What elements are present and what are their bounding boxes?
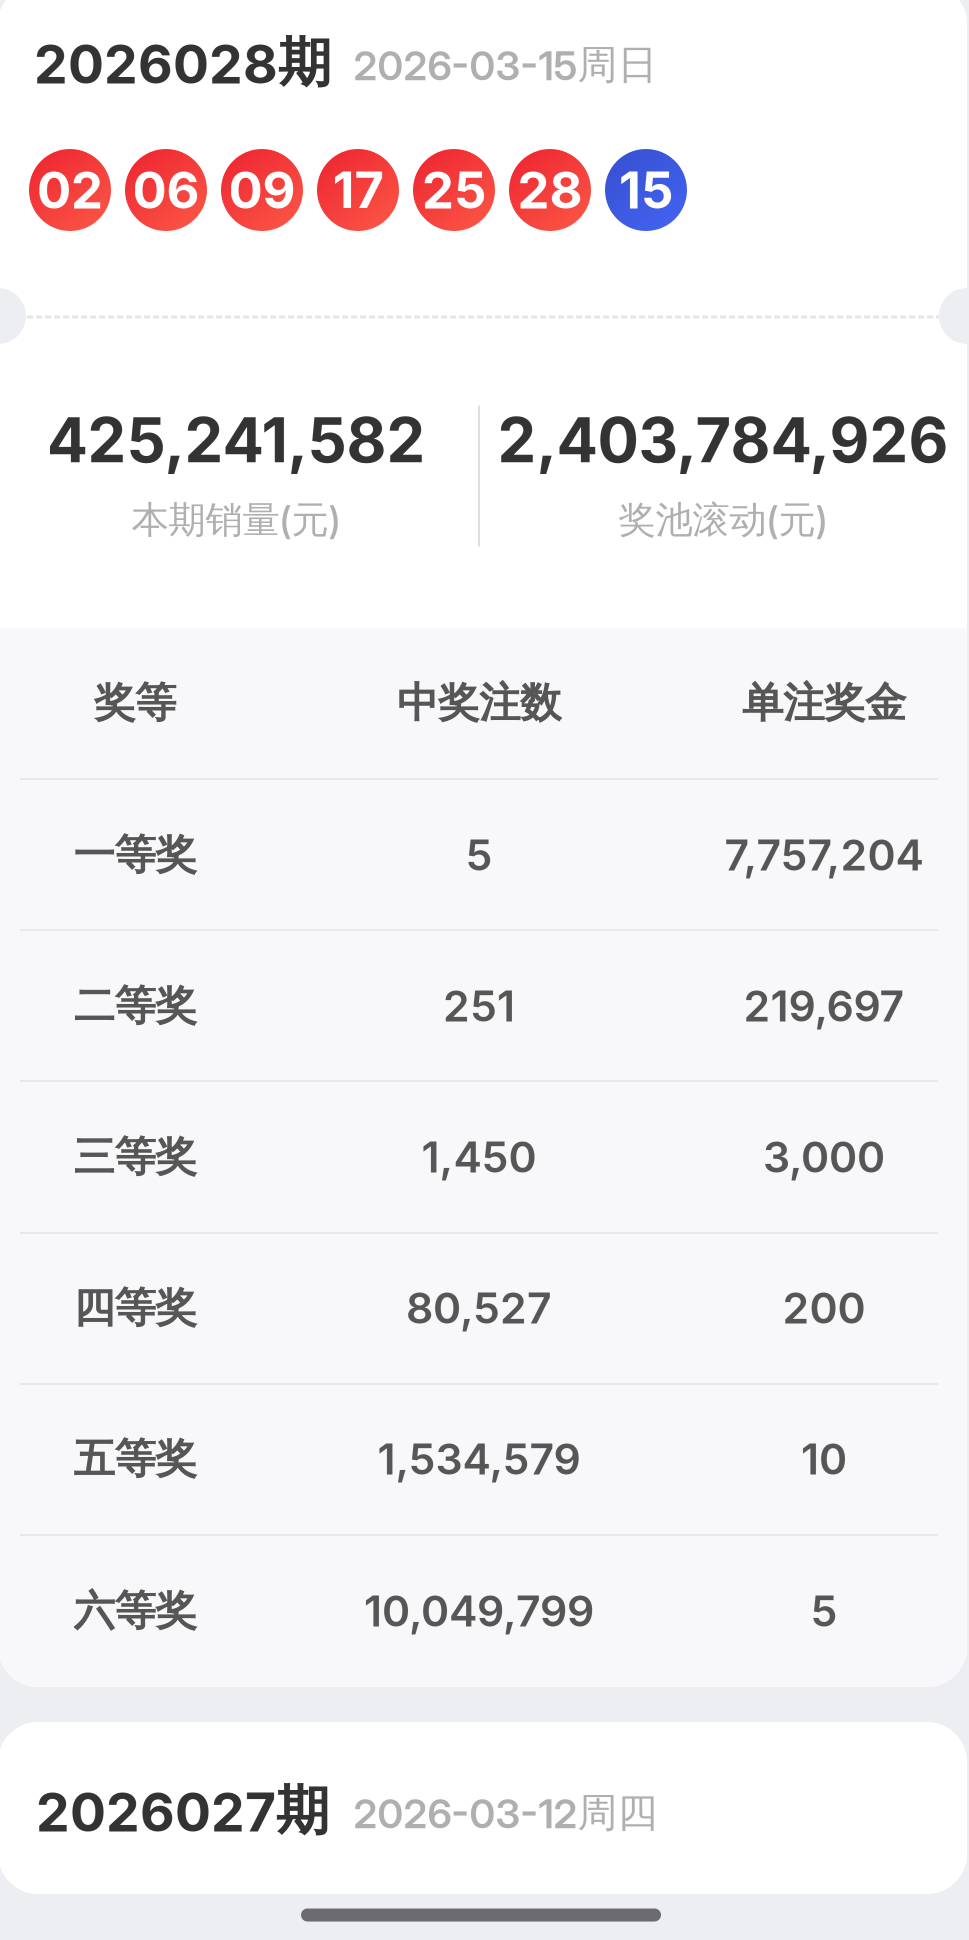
staticText: 7,757,204 — [724, 829, 923, 881]
button[interactable]: 2026027期 — [0, 1722, 967, 1894]
staticText: 五等奖 — [73, 1433, 196, 1485]
staticText: 17 — [332, 159, 383, 221]
button[interactable]: 06 — [125, 149, 207, 231]
button[interactable]: 15 — [605, 149, 687, 231]
button[interactable]: 28 — [509, 149, 591, 231]
staticText: 02 — [37, 159, 103, 221]
staticText: 5 — [465, 829, 492, 881]
staticText: 25 — [422, 159, 486, 221]
staticText: 二等奖 — [73, 980, 196, 1032]
staticText: 15 — [619, 159, 673, 221]
staticText: 三等奖 — [73, 1131, 196, 1183]
staticText: 四等奖 — [73, 1282, 196, 1334]
staticText: 200 — [782, 1282, 865, 1334]
staticText: 2026-03-15周日 — [353, 40, 657, 90]
button[interactable]: 2026028期 — [0, 8, 967, 118]
button[interactable]: 02 — [29, 149, 111, 231]
staticText: 5 — [810, 1585, 837, 1637]
staticText: 251 — [443, 980, 515, 1032]
staticText: 425,241,582 — [46, 403, 425, 477]
staticText: 10 — [801, 1433, 847, 1485]
staticText: 2026-03-12周四 — [353, 1788, 657, 1838]
staticText: 2026028期 — [34, 29, 331, 97]
staticText: 10,049,799 — [364, 1585, 594, 1637]
staticText: 奖池滚动(元) — [618, 496, 827, 543]
staticText: 2026027期 — [36, 1777, 329, 1845]
staticText: 06 — [132, 159, 199, 221]
staticText: 本期销量(元) — [131, 496, 340, 543]
staticText: 中奖注数 — [397, 677, 561, 729]
staticText: 单注奖金 — [742, 677, 906, 729]
staticText: 219,697 — [743, 980, 904, 1032]
button[interactable]: 17 — [317, 149, 399, 231]
staticText: 2,403,784,926 — [497, 403, 948, 477]
staticText: 一等奖 — [73, 829, 196, 881]
button[interactable]: 25 — [413, 149, 495, 231]
staticText: 28 — [517, 159, 582, 221]
button[interactable]: 09 — [221, 149, 303, 231]
staticText: 3,000 — [763, 1131, 885, 1183]
staticText: 80,527 — [406, 1282, 552, 1334]
staticText: 1,534,579 — [377, 1433, 580, 1485]
staticText: 奖等 — [94, 677, 176, 729]
staticText: 09 — [228, 159, 295, 221]
staticText: 六等奖 — [73, 1585, 196, 1637]
staticText: 1,450 — [421, 1131, 536, 1183]
